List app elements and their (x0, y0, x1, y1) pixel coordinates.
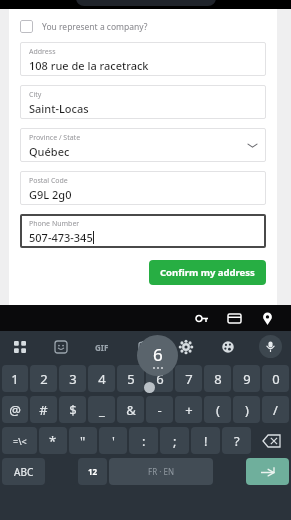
staticText: Saint-Locas (29, 101, 89, 116)
staticText: ! (204, 432, 208, 450)
staticText: ( (216, 401, 220, 419)
staticText: / (273, 401, 278, 419)
button[interactable]: =\< (2, 427, 37, 454)
button[interactable]: / (262, 396, 289, 423)
staticText: 8 (214, 370, 222, 388)
staticText: G9L 2g0 (29, 187, 72, 202)
button[interactable]: 12 (78, 458, 107, 485)
button[interactable]: ABC (2, 458, 45, 485)
staticText: Postal Code (29, 176, 68, 186)
button[interactable]: Voice input (259, 335, 282, 358)
staticText: 108 rue de la racetrack (29, 58, 149, 73)
staticText: ' (112, 432, 115, 450)
staticText: 0 (272, 370, 280, 388)
button[interactable]: Backspace (253, 427, 289, 454)
button[interactable]: Stickers (50, 336, 72, 358)
staticText: ) (245, 401, 249, 419)
button[interactable]: ( (204, 396, 231, 423)
staticText: ? (234, 432, 240, 450)
staticText: + (185, 401, 193, 419)
button[interactable]: : (129, 427, 158, 454)
staticText: 4 (98, 370, 106, 388)
button[interactable]: ? (222, 427, 251, 454)
button[interactable]: + (175, 396, 202, 423)
staticText: ABC (14, 465, 34, 479)
button[interactable]: Postal Code (20, 171, 266, 205)
button[interactable]: GIF (91, 336, 113, 358)
staticText: Phone Number (29, 219, 80, 229)
button[interactable]: ) (233, 396, 260, 423)
button[interactable]: Themes (217, 336, 239, 358)
staticText: " (80, 432, 86, 450)
button[interactable]: Clipboard (133, 336, 155, 358)
staticText: 507-473-345 (29, 230, 93, 245)
staticText: # (39, 401, 48, 419)
staticText: 5 (127, 370, 135, 388)
button[interactable]: Passwords (189, 306, 213, 330)
staticText: Province / State (29, 133, 81, 143)
button[interactable]: 9 (233, 365, 260, 392)
button[interactable]: 2 (30, 365, 57, 392)
staticText: 7 (185, 370, 193, 388)
staticText: 9 (243, 370, 251, 388)
button[interactable]: 7 (175, 365, 202, 392)
staticText: 6 (156, 370, 164, 388)
staticText: Québec (29, 144, 70, 159)
button[interactable]: Addresses (255, 306, 279, 330)
button[interactable]: 4 (88, 365, 115, 392)
staticText: City (29, 90, 42, 100)
staticText: 1 (11, 370, 19, 388)
button[interactable]: Enter (246, 458, 289, 485)
staticText: 6 (153, 343, 163, 366)
staticText: 12 (88, 466, 98, 477)
button[interactable]: - (146, 396, 173, 423)
button[interactable]: 5 (117, 365, 144, 392)
button[interactable]: 0 (262, 365, 289, 392)
staticText: Address (29, 47, 56, 57)
button[interactable]: City (20, 85, 266, 119)
button[interactable]: 6 (146, 365, 173, 392)
staticText: GIF (95, 342, 109, 353)
staticText: Confirm my address (160, 266, 255, 279)
button[interactable]: Apps (9, 336, 31, 358)
staticText: 2 (40, 370, 48, 388)
button[interactable]: ! (191, 427, 220, 454)
staticText: & (126, 401, 136, 419)
staticText: =\< (13, 435, 27, 447)
button[interactable]: Address (20, 42, 266, 76)
button[interactable]: 1 (2, 365, 28, 392)
button[interactable]: FR · EN (109, 458, 213, 485)
staticText: * (49, 432, 57, 450)
staticText: FR · EN (148, 466, 174, 477)
staticText: ; (173, 432, 177, 450)
button[interactable]: # (30, 396, 57, 423)
button[interactable]: Confirm my address (149, 260, 266, 285)
staticText: @ (9, 401, 21, 419)
button[interactable]: Payment cards (222, 306, 246, 330)
button[interactable]: * (39, 427, 67, 454)
button[interactable]: @ (2, 396, 28, 423)
button[interactable]: ; (160, 427, 189, 454)
button[interactable]: Phone Number (20, 214, 266, 248)
staticText: : (142, 432, 146, 450)
button[interactable]: & (117, 396, 144, 423)
staticText: 3 (69, 370, 77, 388)
staticText: You represent a company? (42, 21, 148, 33)
button[interactable]: Province / State (20, 128, 266, 162)
button[interactable]: 3 (59, 365, 86, 392)
button[interactable]: ' (99, 427, 127, 454)
staticText: - (157, 401, 162, 419)
staticText: $ (69, 401, 77, 419)
button[interactable]: Settings (175, 336, 197, 358)
button[interactable]: You represent a company? (20, 17, 266, 36)
staticText: _ (99, 401, 105, 419)
button[interactable]: 8 (204, 365, 231, 392)
button[interactable]: _ (88, 396, 115, 423)
button[interactable]: " (69, 427, 97, 454)
button[interactable]: $ (59, 396, 86, 423)
